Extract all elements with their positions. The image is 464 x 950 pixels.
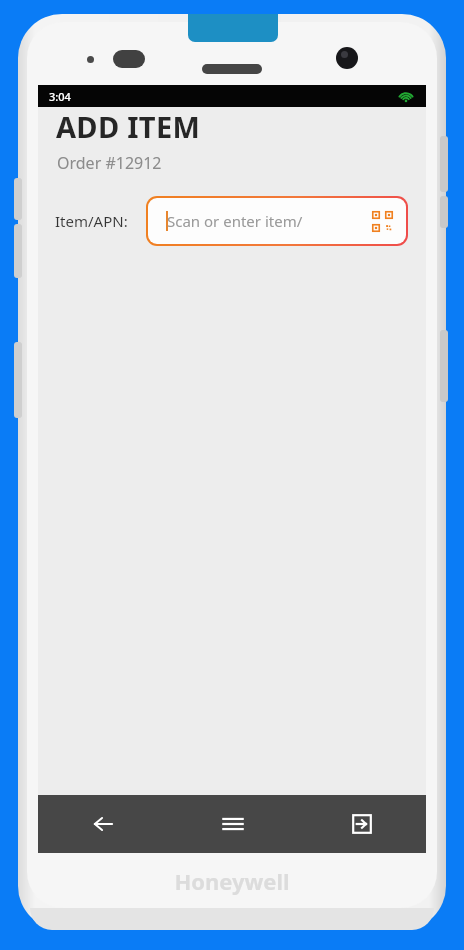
staticText: Order #12912: [57, 152, 162, 174]
staticText: 3:04: [49, 89, 71, 104]
button[interactable]: Scan barcode: [368, 207, 396, 235]
staticText: ADD ITEM: [56, 107, 201, 146]
staticText: Honeywell: [174, 866, 290, 896]
staticText: Item/APN:: [55, 211, 128, 231]
button[interactable]: Recent apps: [297, 795, 426, 853]
button[interactable]: Menu: [168, 795, 297, 853]
button[interactable]: Back: [38, 795, 168, 853]
button[interactable]: Scan or enter item/: [148, 198, 406, 244]
staticText: Scan or enter item/: [167, 211, 303, 231]
